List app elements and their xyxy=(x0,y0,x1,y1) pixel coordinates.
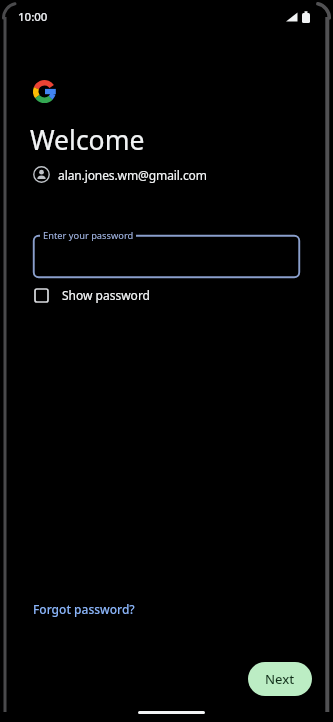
staticText: Forgot password? xyxy=(33,601,135,617)
staticText: Enter your password xyxy=(43,229,134,242)
button[interactable]: Forgot password? xyxy=(25,593,143,625)
button[interactable] xyxy=(33,235,300,278)
staticText: Show password xyxy=(62,287,150,303)
button[interactable]: alan.jones.wm@gmail.com xyxy=(33,166,207,183)
staticText: alan.jones.wm@gmail.com xyxy=(58,167,207,183)
button[interactable]: Show password xyxy=(34,287,150,303)
staticText: 10:00 xyxy=(18,9,48,25)
staticText: Next xyxy=(265,670,295,688)
button[interactable]: Next xyxy=(248,662,312,696)
staticText: Welcome xyxy=(30,122,145,158)
